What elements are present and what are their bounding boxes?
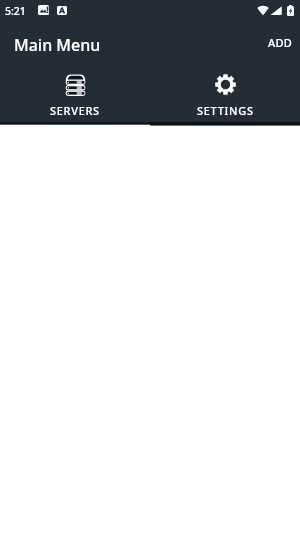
staticText: 5:21	[5, 4, 26, 18]
button[interactable]: ADD	[258, 26, 300, 59]
staticText: Main Menu	[14, 34, 101, 56]
staticText: SETTINGS	[197, 103, 254, 118]
button[interactable]: Settings tab	[150, 63, 300, 122]
staticText: ADD	[268, 35, 292, 50]
button[interactable]: Servers tab	[0, 63, 150, 122]
staticText: SERVERS	[50, 103, 100, 118]
